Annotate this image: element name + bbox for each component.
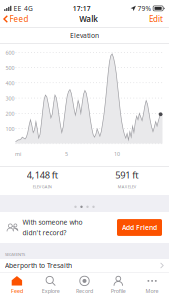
button[interactable]: Edit [149,11,169,27]
staticText: 17:17 [73,4,91,13]
staticText: Feed [9,14,28,24]
staticText: 400 [5,80,14,87]
button[interactable]: Explore [34,273,68,300]
staticText: Walk [79,14,98,24]
staticText: 5 [65,150,68,158]
staticText: SEGMENTS [5,252,25,257]
staticText: 4G [24,4,33,13]
staticText: Add Friend [122,223,157,232]
button[interactable]: More [135,273,169,300]
staticText: ELEV GAIN [33,184,52,189]
staticText: 500 [5,64,14,71]
button[interactable]: Record [68,273,101,300]
staticText: 200 [5,110,14,117]
button[interactable]: With someone who [0,212,169,243]
staticText: 300 [5,95,14,102]
staticText: didn't record? [22,228,66,237]
staticText: 591 ft [115,169,138,181]
staticText: 79% [138,4,152,13]
staticText: mi [15,150,21,158]
staticText: With someone who [22,218,82,227]
button[interactable]: Feed [0,273,34,300]
button[interactable]: Profile [101,273,135,300]
staticText: MAX ELEV [118,184,136,189]
staticText: Explore [42,287,60,294]
staticText: EE [14,4,22,13]
staticText: 100 [5,125,14,132]
staticText: Edit [149,14,163,24]
staticText: Aberporth to Tresaith [5,261,72,270]
staticText: Feed [11,287,23,294]
button[interactable]: Feed [0,11,28,27]
staticText: 4,148 ft [27,169,58,181]
staticText: More [146,287,159,294]
button[interactable]: Aberporth to Tresaith [0,259,169,272]
staticText: 10 [114,150,120,158]
staticText: 600 [5,49,14,56]
staticText: Record [76,287,93,294]
staticText: Profile [111,287,126,294]
staticText: Elevation [70,31,99,40]
